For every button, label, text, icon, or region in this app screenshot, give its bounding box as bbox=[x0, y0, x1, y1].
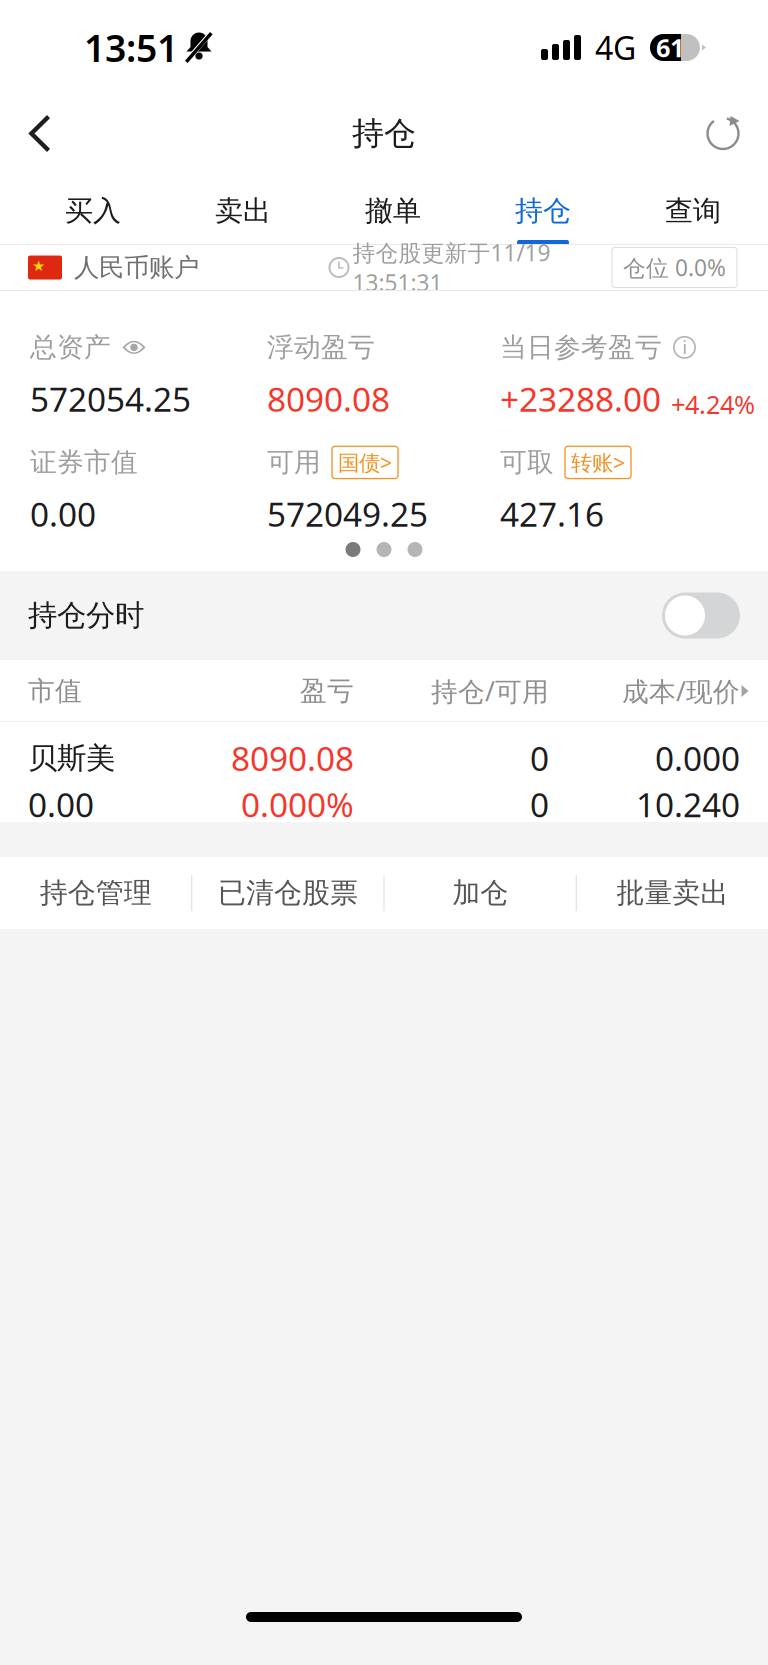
staticText: 8090.08 bbox=[267, 377, 390, 421]
staticText: 证券市值 bbox=[30, 446, 138, 479]
staticText: 批量卖出 bbox=[616, 876, 728, 910]
staticText: 0 bbox=[530, 736, 549, 780]
button[interactable]: 国债> bbox=[332, 446, 398, 478]
staticText: i bbox=[682, 336, 686, 359]
button[interactable]: 批量卖出 bbox=[577, 857, 768, 929]
staticText: 查询 bbox=[665, 194, 721, 228]
button[interactable]: 仓位 0.0% bbox=[612, 247, 737, 287]
staticText: 已清仓股票 bbox=[218, 876, 358, 910]
staticText: 买入 bbox=[65, 194, 121, 228]
staticText: 持仓管理 bbox=[40, 876, 152, 910]
button[interactable]: 刷新 bbox=[680, 95, 768, 172]
staticText: 61 bbox=[656, 31, 684, 64]
staticText: 当日参考盈亏 bbox=[500, 331, 662, 364]
staticText: 撤单 bbox=[365, 194, 421, 228]
button[interactable]: 查询 bbox=[618, 172, 768, 245]
button[interactable]: 已清仓股票 bbox=[192, 857, 383, 929]
button[interactable]: 持仓管理 bbox=[0, 857, 191, 929]
staticText: 卖出 bbox=[215, 194, 271, 228]
staticText: 427.16 bbox=[500, 492, 604, 536]
staticText: 持仓 bbox=[352, 114, 416, 153]
staticText: 持仓/可用 bbox=[431, 673, 549, 709]
staticText: 持仓分时 bbox=[28, 597, 144, 633]
staticText: 浮动盈亏 bbox=[267, 331, 375, 364]
staticText: +23288.00 bbox=[500, 377, 661, 421]
button[interactable]: 买入 bbox=[18, 172, 168, 245]
staticText: 572049.25 bbox=[267, 492, 428, 536]
staticText: 盈亏 bbox=[300, 675, 354, 707]
staticText: 总资产 bbox=[30, 331, 111, 364]
button[interactable]: 撤单 bbox=[318, 172, 468, 245]
button[interactable]: 转账> bbox=[565, 446, 631, 478]
button[interactable]: 返回 bbox=[0, 95, 74, 172]
button[interactable]: 卖出 bbox=[168, 172, 318, 245]
staticText: 贝斯美 bbox=[28, 740, 115, 776]
staticText: 8090.08 bbox=[231, 736, 354, 780]
staticText: 4G bbox=[595, 26, 636, 69]
staticText: 国债> bbox=[338, 448, 392, 476]
staticText: +4.24% bbox=[671, 387, 755, 421]
button[interactable]: 持仓分时 bbox=[662, 592, 740, 638]
button[interactable]: 加仓 bbox=[384, 857, 576, 929]
staticText: 0.000% bbox=[241, 782, 354, 827]
staticText: 仓位 0.0% bbox=[623, 252, 726, 282]
staticText: 可用 bbox=[267, 446, 321, 479]
staticText: 市值 bbox=[28, 675, 82, 707]
staticText: 人民币账户 bbox=[74, 252, 199, 283]
staticText: 可取 bbox=[500, 446, 554, 479]
staticText: 转账> bbox=[571, 448, 625, 476]
staticText: 10.240 bbox=[636, 782, 740, 827]
staticText: 加仓 bbox=[452, 876, 508, 910]
staticText: 0.000 bbox=[655, 736, 740, 780]
button[interactable]: 持仓 bbox=[468, 172, 618, 245]
staticText: 0.00 bbox=[28, 782, 94, 827]
staticText: ★ bbox=[32, 257, 45, 274]
staticText: 成本/现价 bbox=[622, 673, 740, 709]
button[interactable]: 贝斯美 bbox=[0, 722, 768, 822]
staticText: 0.00 bbox=[30, 492, 96, 536]
staticText: 持仓股更新于11/19 13:51:31 bbox=[352, 237, 550, 298]
staticText: 持仓 bbox=[515, 194, 571, 228]
staticText: 0 bbox=[530, 782, 549, 827]
staticText: 572054.25 bbox=[30, 377, 191, 421]
staticText: 13:51 bbox=[84, 23, 178, 72]
